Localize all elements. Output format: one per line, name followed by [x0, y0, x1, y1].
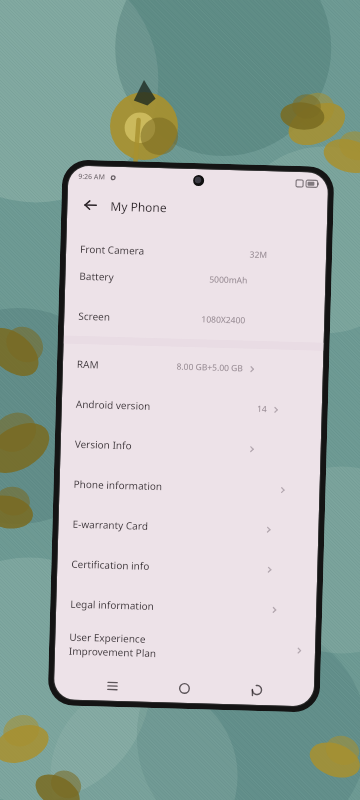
staticText: E-warranty Card	[72, 517, 149, 533]
staticText: User Experience Improvement Plan	[69, 630, 179, 661]
button[interactable]: Back	[77, 192, 104, 218]
staticText: Certification info	[71, 557, 150, 573]
button[interactable]: Recent apps	[97, 670, 127, 701]
staticText: Phone information	[73, 477, 163, 493]
button[interactable]: Legal information	[56, 583, 317, 630]
staticText: 8.00 GB+5.00 GB	[176, 361, 243, 374]
staticText: 5000mAh	[208, 273, 247, 286]
staticText: Legal information	[70, 597, 154, 613]
staticText: Front Camera	[80, 242, 145, 258]
button[interactable]: Phone information	[59, 463, 320, 511]
button[interactable]: Certification info	[57, 543, 318, 590]
button[interactable]: Version Info	[60, 423, 321, 471]
staticText: Version Info	[74, 437, 132, 452]
staticText: 32M	[249, 249, 267, 261]
staticText: My Phone	[110, 198, 168, 215]
staticText: 14	[257, 403, 267, 415]
button[interactable]: Home	[169, 672, 199, 703]
button[interactable]: Screen	[64, 295, 325, 343]
staticText: Battery	[79, 269, 115, 284]
button[interactable]: User Experience Improvement Plan	[55, 623, 316, 670]
button[interactable]: RAM	[62, 343, 323, 391]
staticText: Screen	[78, 309, 110, 324]
staticText: 9:26 AM	[78, 172, 105, 182]
button[interactable]: Back	[241, 674, 272, 705]
button[interactable]: E-warranty Card	[58, 503, 319, 550]
staticText: RAM	[77, 357, 99, 371]
button[interactable]: Front Camera	[66, 221, 327, 263]
staticText: 1080X2400	[201, 313, 245, 326]
button[interactable]: Battery	[65, 255, 326, 303]
button[interactable]: Android version	[61, 383, 322, 431]
staticText: Android version	[76, 397, 151, 413]
